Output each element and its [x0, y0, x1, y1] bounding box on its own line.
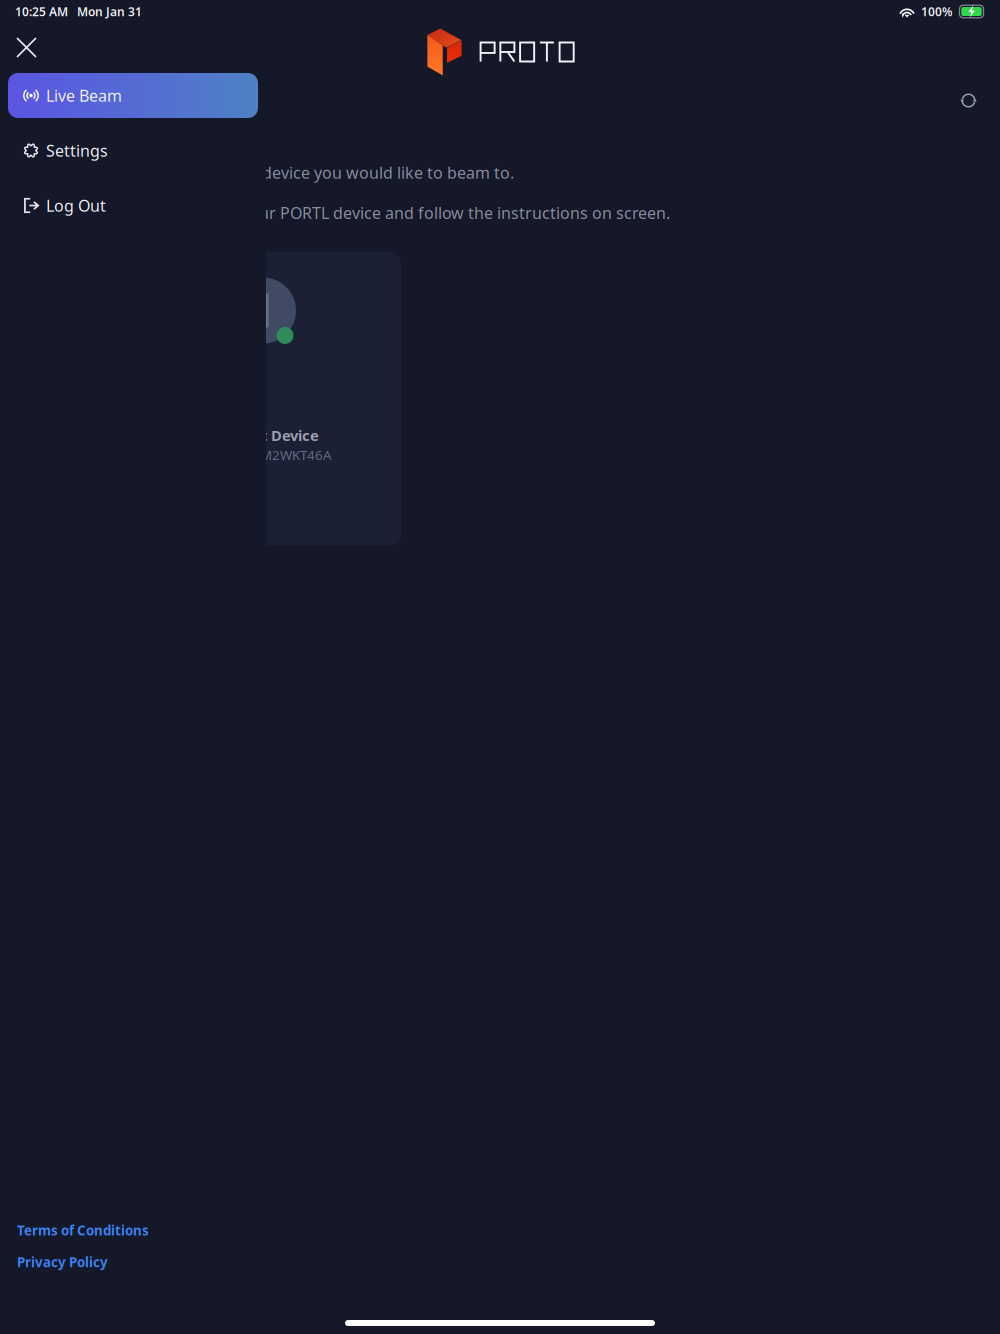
button[interactable]: Refresh	[949, 81, 988, 120]
button[interactable]: Live Beam	[0, 73, 258, 118]
staticText: Settings	[46, 140, 108, 161]
staticText: Terms of Conditions	[17, 1222, 149, 1239]
staticText: 2. Tap 'Beam' on your PORTL device and f…	[114, 202, 670, 223]
staticText: 100%	[921, 3, 953, 19]
staticText: Log Out	[46, 195, 106, 216]
button[interactable]: Settings	[0, 128, 258, 173]
staticText: PTLM2WKT46A	[238, 446, 332, 464]
staticText: 1. Select the PORTL device you would lik…	[114, 162, 514, 183]
staticText: Test Device	[238, 425, 319, 445]
staticText: 10:25 AM	[15, 3, 68, 19]
button[interactable]: Terms of Conditions	[0, 1215, 169, 1246]
button[interactable]: Log Out	[0, 183, 258, 228]
button[interactable]: Privacy Policy	[0, 1246, 128, 1278]
button[interactable]: Close menu	[0, 24, 54, 73]
staticText: Live Beam	[46, 85, 122, 106]
staticText: Privacy Policy	[17, 1253, 108, 1271]
staticText: Mon Jan 31	[77, 3, 142, 19]
